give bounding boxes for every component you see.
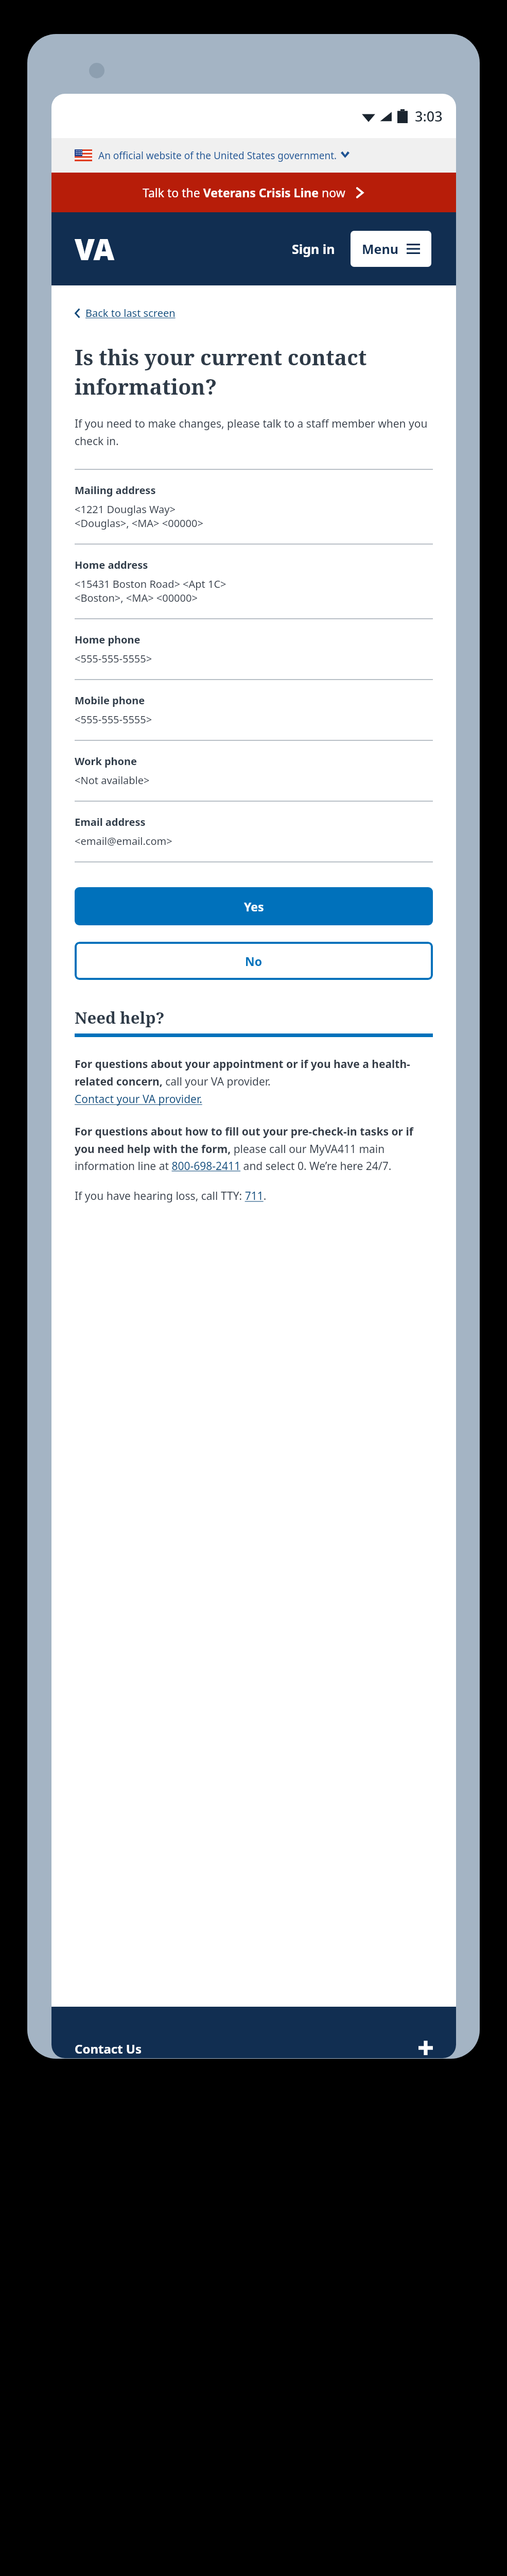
- staticText: <555-555-5555>: [75, 713, 152, 726]
- staticText: Home phone: [75, 633, 141, 647]
- staticText: <Douglas>, <MA> <00000>: [75, 516, 203, 530]
- staticText: Contact Us: [75, 2040, 142, 2057]
- other: Expand Contact Us: [418, 2041, 433, 2055]
- staticText: <555-555-5555>: [75, 652, 152, 666]
- staticText: For questions about your appointment or …: [75, 1057, 433, 1089]
- staticText: Mailing address: [75, 483, 156, 497]
- button[interactable]: Contact your VA provider.: [75, 1092, 202, 1107]
- button[interactable]: An official website of the United States…: [51, 138, 456, 173]
- staticText: Mobile phone: [75, 693, 145, 707]
- staticText: If you need to make changes, please talk…: [75, 416, 433, 448]
- staticText: For questions about how to fill out your…: [75, 1124, 433, 1173]
- staticText: No: [245, 953, 263, 969]
- button[interactable]: VA: [75, 229, 115, 268]
- button[interactable]: Yes: [75, 887, 433, 925]
- staticText: Email address: [75, 815, 146, 829]
- staticText: <1221 Douglas Way>: [75, 502, 176, 516]
- staticText: Menu: [362, 240, 399, 258]
- staticText: Yes: [244, 899, 264, 914]
- staticText: Talk to the Veterans Crisis Line now: [143, 184, 345, 200]
- staticText: Home address: [75, 558, 148, 572]
- staticText: <email@email.com>: [75, 834, 172, 848]
- staticText: <Boston>, <MA> <00000>: [75, 591, 198, 605]
- button[interactable]: Sign in: [288, 236, 339, 262]
- staticText: Work phone: [75, 754, 137, 768]
- staticText: An official website of the United States…: [98, 149, 337, 162]
- staticText: Is this your current contact information…: [75, 343, 433, 401]
- button[interactable]: Contact Us: [51, 2007, 456, 2058]
- staticText: If you have hearing loss, call TTY: 711.: [75, 1189, 267, 1204]
- staticText: 3:03: [415, 107, 443, 126]
- staticText: <15431 Boston Road> <Apt 1C>: [75, 577, 226, 591]
- staticText: <Not available>: [75, 773, 150, 787]
- button[interactable]: No: [75, 942, 433, 980]
- button[interactable]: Back to last screen: [75, 306, 176, 320]
- button[interactable]: Menu: [351, 231, 431, 267]
- button[interactable]: Talk to the Veterans Crisis Line now: [51, 173, 456, 212]
- staticText: Need help?: [75, 1007, 165, 1028]
- staticText: Back to last screen: [85, 306, 176, 320]
